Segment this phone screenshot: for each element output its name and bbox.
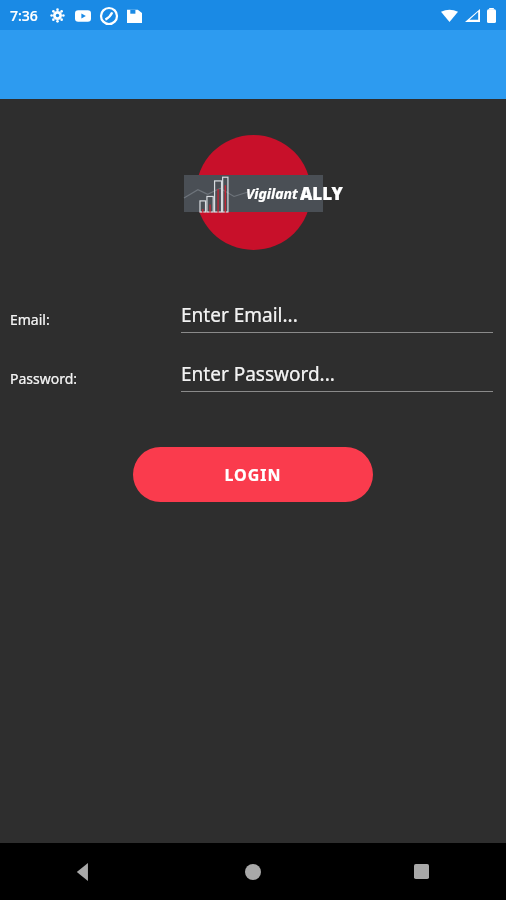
button[interactable]: Recent apps [337,843,506,900]
staticText: Enter Password... [181,361,335,387]
button[interactable]: Back [0,843,168,900]
staticText: Password: [10,369,78,388]
button[interactable]: Enter Email... [181,302,493,333]
staticText: Email: [10,310,50,329]
staticText: Enter Email... [181,302,298,328]
button[interactable]: Enter Password... [181,361,493,392]
staticText: Vigilant [246,184,298,203]
button[interactable]: Home [168,843,337,900]
button[interactable]: LOGIN [133,447,373,502]
staticText: ALLY [300,182,343,205]
staticText: 7:36 [10,6,38,25]
staticText: LOGIN [224,464,282,486]
